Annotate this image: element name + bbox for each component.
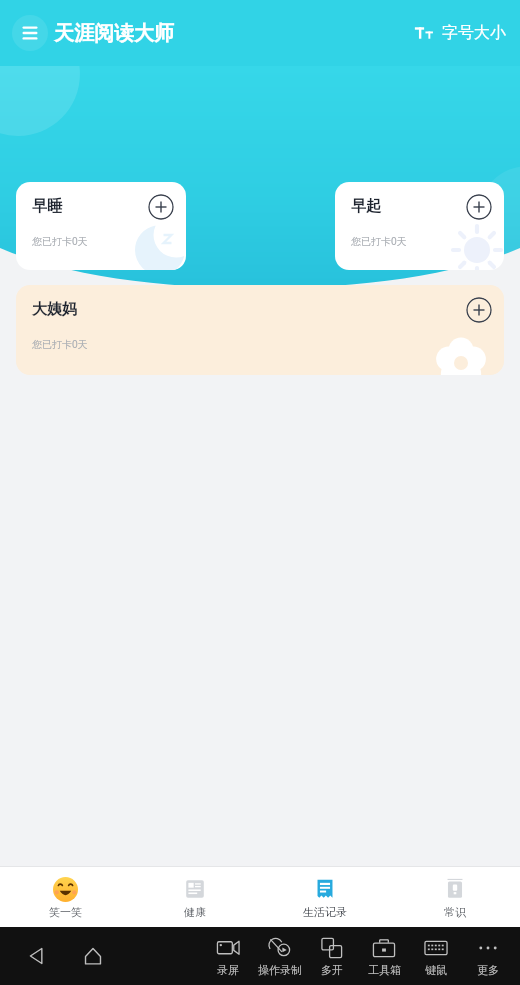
- staticText: 操作录制: [258, 963, 302, 977]
- staticText: 大姨妈: [32, 300, 77, 319]
- staticText: 录屏: [217, 963, 239, 977]
- button[interactable]: 多开: [306, 936, 358, 977]
- button[interactable]: 生活记录: [260, 867, 390, 927]
- staticText: 健康: [184, 905, 206, 919]
- staticText: 您已打卡0天: [351, 234, 407, 248]
- staticText: 常识: [444, 905, 466, 919]
- staticText: 笑一笑: [49, 905, 82, 919]
- staticText: 键鼠: [425, 963, 447, 977]
- button[interactable]: 常识: [390, 867, 520, 927]
- button[interactable]: 笑一笑: [0, 867, 130, 927]
- button[interactable]: Add 早起: [466, 194, 492, 220]
- button[interactable]: 键鼠: [410, 936, 462, 977]
- staticText: 字号大小: [442, 23, 506, 43]
- staticText: 多开: [321, 963, 343, 977]
- button[interactable]: Menu: [12, 15, 48, 51]
- staticText: 天涯阅读大师: [54, 21, 174, 46]
- staticText: 生活记录: [303, 905, 347, 919]
- button[interactable]: 操作录制: [254, 936, 306, 977]
- staticText: 早睡: [32, 197, 62, 216]
- button[interactable]: Add 早睡: [148, 194, 174, 220]
- staticText: 更多: [477, 963, 499, 977]
- staticText: 您已打卡0天: [32, 234, 88, 248]
- button[interactable]: 早起: [335, 182, 504, 270]
- staticText: 早起: [351, 197, 381, 216]
- button[interactable]: 大姨妈: [16, 285, 504, 375]
- button[interactable]: Add 大姨妈: [466, 297, 492, 323]
- staticText: 工具箱: [368, 963, 401, 977]
- button[interactable]: 字号大小: [412, 14, 508, 52]
- button[interactable]: 工具箱: [358, 936, 410, 977]
- button[interactable]: 早睡: [16, 182, 186, 270]
- staticText: 您已打卡0天: [32, 337, 88, 351]
- button[interactable]: 录屏: [202, 936, 254, 977]
- button[interactable]: 健康: [130, 867, 260, 927]
- button[interactable]: 更多: [462, 936, 514, 977]
